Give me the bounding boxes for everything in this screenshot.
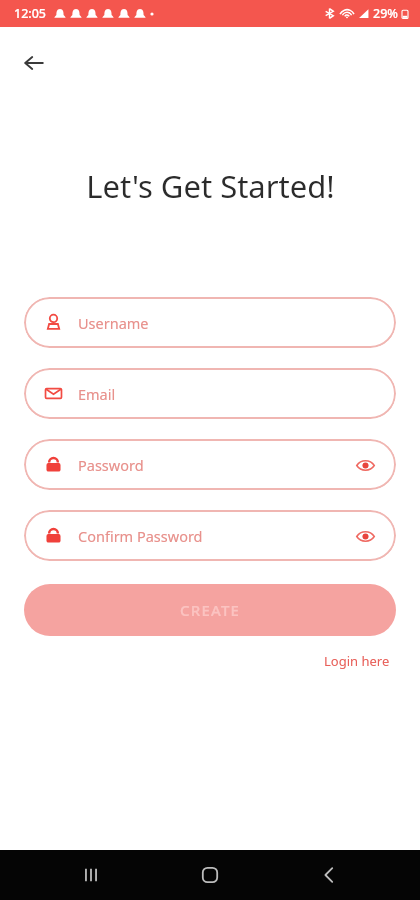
button[interactable]: Toggle password visibility	[352, 452, 378, 478]
staticText: Username	[78, 313, 149, 333]
button[interactable]: Recent apps	[63, 850, 119, 900]
button[interactable]: Username	[24, 297, 396, 348]
button[interactable]: Password	[24, 439, 396, 490]
button[interactable]: Email	[24, 368, 396, 419]
staticText: Email	[78, 384, 116, 404]
staticText: Let's Get Started!	[86, 165, 335, 207]
staticText: CREATE	[180, 600, 241, 620]
button[interactable]: Home	[182, 850, 238, 900]
staticText: Confirm Password	[78, 526, 203, 546]
staticText: 12:05	[14, 5, 47, 22]
staticText: Password	[78, 455, 144, 475]
button[interactable]: Back	[301, 850, 357, 900]
button[interactable]: Login here	[320, 648, 394, 674]
button[interactable]: Confirm Password	[24, 510, 396, 561]
button[interactable]: CREATE	[24, 584, 396, 636]
button[interactable]: Back	[12, 41, 56, 85]
button[interactable]: Toggle password visibility	[352, 523, 378, 549]
staticText: 29%	[373, 5, 398, 22]
staticText: Login here	[324, 652, 390, 670]
